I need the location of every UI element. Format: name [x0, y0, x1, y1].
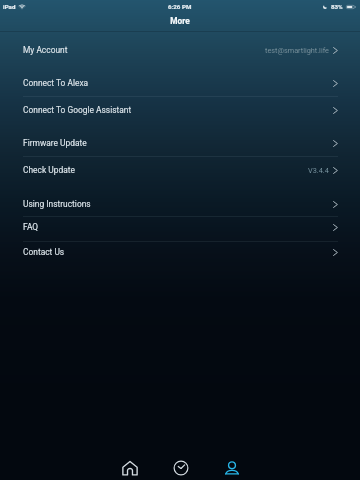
button[interactable]: Connect To Alexa	[0, 70, 360, 96]
button[interactable]: My Account	[0, 37, 360, 63]
staticText: More	[170, 16, 190, 26]
staticText: Connect To Google Assistant	[23, 105, 132, 115]
staticText: iPad	[3, 3, 16, 10]
staticText: test@smartlight.life	[265, 46, 329, 55]
button[interactable]: Schedule	[155, 455, 206, 480]
staticText: Contact Us	[23, 247, 65, 257]
button[interactable]: FAQ	[0, 214, 360, 240]
staticText: FAQ	[23, 222, 39, 232]
button[interactable]: Check Update	[0, 157, 360, 183]
staticText: Using Instructions	[23, 199, 91, 209]
staticText: V3.4.4	[308, 166, 329, 175]
staticText: 6:26 PM	[168, 3, 192, 10]
staticText: Check Update	[23, 165, 75, 175]
button[interactable]: Contact Us	[0, 239, 360, 265]
button[interactable]: Home	[104, 455, 155, 480]
staticText: Firmware Update	[23, 138, 87, 148]
staticText: 83%	[331, 3, 343, 10]
button[interactable]: Connect To Google Assistant	[0, 97, 360, 123]
staticText: My Account	[23, 45, 68, 55]
staticText: Connect To Alexa	[23, 78, 89, 88]
button[interactable]: Firmware Update	[0, 130, 360, 156]
button[interactable]: Using Instructions	[0, 191, 360, 217]
button[interactable]: Profile	[206, 455, 257, 480]
